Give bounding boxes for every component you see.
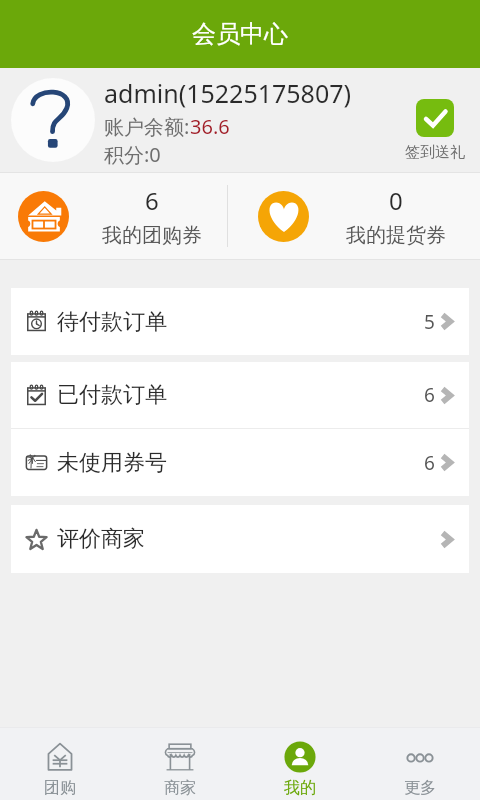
staticText: 签到送礼 <box>405 143 465 162</box>
staticText: 未使用券号 <box>57 449 167 477</box>
button[interactable]: 评价商家 <box>11 505 469 573</box>
button[interactable]: Avatar <box>11 78 95 162</box>
button[interactable]: 签到送礼 <box>394 99 476 172</box>
staticText: 0 <box>389 184 403 217</box>
staticText: 6 <box>424 450 435 476</box>
staticText: 6 <box>424 382 435 408</box>
staticText: 我的团购券 <box>102 223 202 248</box>
staticText: 36.6 <box>190 113 230 140</box>
staticText: 待付款订单 <box>57 308 167 336</box>
staticText: 账户余额: <box>104 113 190 140</box>
button[interactable]: 商家 <box>120 728 240 800</box>
staticText: 我的提货券 <box>346 223 446 248</box>
staticText: 我的 <box>284 778 316 798</box>
staticText: admin(15225175807) <box>104 76 351 110</box>
staticText: 评价商家 <box>57 525 145 553</box>
staticText: 5 <box>424 309 435 335</box>
button[interactable]: 6 <box>0 173 227 259</box>
staticText: 会员中心 <box>192 19 288 49</box>
staticText: 团购 <box>44 778 76 798</box>
button[interactable]: 更多 <box>360 728 480 800</box>
button[interactable]: 团购 <box>0 728 120 800</box>
staticText: 商家 <box>164 778 196 798</box>
button[interactable]: 0 <box>228 173 480 259</box>
staticText: 已付款订单 <box>57 381 167 409</box>
button[interactable]: 已付款订单 <box>11 362 469 428</box>
button[interactable]: 我的 <box>240 728 360 800</box>
staticText: 6 <box>145 184 159 217</box>
button[interactable]: 未使用券号 <box>11 429 469 496</box>
staticText: 更多 <box>404 778 436 798</box>
staticText: 积分:0 <box>104 141 161 168</box>
button[interactable]: 待付款订单 <box>11 288 469 355</box>
